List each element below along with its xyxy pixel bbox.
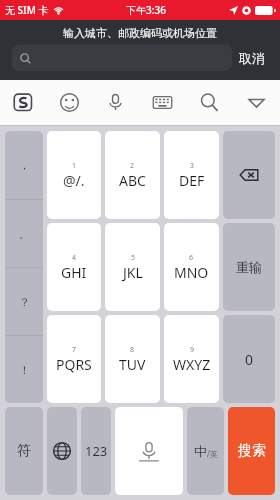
button[interactable]: Delete bbox=[223, 131, 275, 219]
button[interactable]: ， bbox=[5, 131, 43, 199]
staticText: 4 bbox=[72, 253, 77, 263]
button[interactable]: Space bbox=[115, 407, 183, 495]
staticText: /英 bbox=[207, 448, 218, 459]
staticText: 9 bbox=[190, 345, 195, 355]
button[interactable]: 123 bbox=[81, 407, 111, 495]
button[interactable]: Emoji bbox=[46, 80, 92, 125]
staticText: 输入城市、邮政编码或机场位置 bbox=[63, 26, 217, 40]
button[interactable]: 符 bbox=[5, 407, 43, 495]
staticText: @/. bbox=[63, 171, 85, 190]
staticText: 123 bbox=[85, 442, 108, 460]
button[interactable]: 5 bbox=[105, 223, 160, 311]
staticText: 7 bbox=[72, 345, 77, 355]
staticText: 重输 bbox=[236, 259, 262, 275]
staticText: 。 bbox=[19, 227, 30, 241]
staticText: 2 bbox=[130, 161, 135, 171]
staticText: PQRS bbox=[56, 355, 92, 374]
staticText: 取消 bbox=[239, 50, 265, 66]
staticText: 下午3:36 bbox=[126, 3, 166, 17]
button[interactable]: Hide keyboard bbox=[233, 80, 280, 125]
staticText: MNO bbox=[174, 263, 209, 282]
staticText: DEF bbox=[179, 171, 205, 190]
button[interactable]: ？ bbox=[5, 268, 43, 335]
button[interactable]: 中 bbox=[187, 407, 224, 495]
button[interactable]: 2 bbox=[105, 131, 160, 219]
staticText: ABC bbox=[119, 171, 146, 190]
button[interactable]: 6 bbox=[164, 223, 219, 311]
button[interactable]: ！ bbox=[5, 336, 43, 403]
button[interactable]: 3 bbox=[164, 131, 219, 219]
staticText: WXYZ bbox=[173, 355, 211, 374]
button[interactable] bbox=[12, 45, 232, 71]
staticText: 0 bbox=[245, 350, 254, 369]
button[interactable]: 9 bbox=[164, 315, 219, 403]
button[interactable]: 重输 bbox=[223, 223, 275, 311]
button[interactable]: 0 bbox=[223, 315, 275, 403]
staticText: 搜索 bbox=[238, 442, 266, 460]
staticText: ， bbox=[19, 158, 30, 172]
button[interactable]: 7 bbox=[47, 315, 101, 403]
button[interactable]: 8 bbox=[105, 315, 160, 403]
staticText: 1 bbox=[72, 161, 77, 171]
staticText: 3 bbox=[190, 161, 195, 171]
button[interactable]: 取消 bbox=[232, 47, 272, 69]
button[interactable]: Voice input bbox=[92, 80, 139, 125]
button[interactable]: Search bbox=[186, 80, 233, 125]
button[interactable]: Keyboard bbox=[139, 80, 186, 125]
staticText: 中 bbox=[194, 443, 207, 459]
staticText: ？ bbox=[19, 295, 30, 309]
staticText: JKL bbox=[123, 263, 143, 282]
button[interactable]: 1 bbox=[47, 131, 101, 219]
staticText: 8 bbox=[130, 345, 135, 355]
staticText: 无 SIM 卡 bbox=[5, 3, 49, 17]
staticText: TUV bbox=[119, 355, 146, 374]
staticText: 符 bbox=[17, 442, 31, 460]
staticText: ！ bbox=[19, 363, 30, 377]
button[interactable]: Sogou input bbox=[0, 80, 46, 125]
staticText: 5 bbox=[131, 253, 136, 263]
button[interactable]: Switch language bbox=[47, 407, 77, 495]
staticText: 6 bbox=[189, 253, 194, 263]
button[interactable]: 4 bbox=[47, 223, 101, 311]
button[interactable]: 搜索 bbox=[228, 407, 275, 495]
staticText: GHI bbox=[61, 263, 87, 282]
